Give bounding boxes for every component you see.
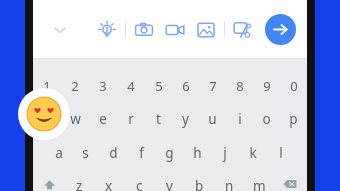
staticText: 9	[263, 77, 271, 95]
button[interactable]: Shift	[33, 177, 65, 191]
button[interactable]: Expand	[47, 17, 73, 43]
staticText: d	[109, 144, 118, 162]
button[interactable]: s	[72, 143, 99, 163]
button[interactable]: a	[45, 143, 72, 163]
button[interactable]: Gallery	[193, 17, 219, 43]
staticText: n	[225, 177, 234, 191]
button[interactable]: x	[94, 177, 124, 191]
button[interactable]: 2	[61, 76, 89, 96]
staticText: g	[165, 144, 174, 162]
button[interactable]: q	[33, 109, 61, 129]
staticText: i	[238, 110, 242, 128]
staticText: x	[105, 177, 113, 191]
staticText: j	[223, 144, 227, 162]
staticText: l	[279, 144, 283, 162]
button[interactable]: l	[267, 143, 295, 163]
button[interactable]: g	[155, 143, 183, 163]
staticText: v	[166, 177, 173, 191]
staticText: e	[99, 110, 107, 128]
button[interactable]: Heart eyes emoji	[18, 88, 70, 140]
button[interactable]: t	[145, 109, 172, 129]
button[interactable]: p	[280, 109, 307, 129]
staticText: 3	[99, 77, 107, 95]
staticText: f	[139, 144, 144, 162]
button[interactable]: Send	[265, 14, 296, 45]
button[interactable]: 8	[226, 76, 253, 96]
staticText: t	[156, 110, 161, 128]
staticText: 0	[290, 77, 298, 95]
staticText: 1	[43, 77, 51, 95]
staticText: z	[76, 177, 83, 191]
staticText: q	[43, 110, 52, 128]
button[interactable]: 3	[89, 76, 117, 96]
button[interactable]: c	[124, 177, 154, 191]
button[interactable]: Video	[162, 17, 188, 43]
button[interactable]: Stickers	[230, 17, 256, 43]
button[interactable]: 7	[199, 76, 226, 96]
button[interactable]: w	[61, 109, 89, 129]
button[interactable]: o	[253, 109, 280, 129]
staticText: c	[136, 177, 143, 191]
staticText: w	[70, 110, 81, 128]
staticText: 2	[71, 77, 79, 95]
button[interactable]: m	[244, 177, 274, 191]
button[interactable]: n	[214, 177, 244, 191]
button[interactable]: 6	[172, 76, 199, 96]
button[interactable]: Camera	[131, 17, 157, 43]
staticText: 8	[236, 77, 244, 95]
staticText: b	[195, 177, 204, 191]
button[interactable]: Backspace	[274, 177, 307, 191]
button[interactable]: d	[99, 143, 127, 163]
button[interactable]: y	[172, 109, 199, 129]
staticText: a	[55, 144, 63, 162]
staticText: o	[262, 110, 271, 128]
button[interactable]: f	[127, 143, 155, 163]
staticText: h	[193, 144, 202, 162]
staticText: r	[128, 110, 134, 128]
staticText: s	[82, 144, 89, 162]
staticText: k	[249, 144, 257, 162]
button[interactable]: h	[183, 143, 211, 163]
staticText: u	[208, 110, 217, 128]
staticText: y	[182, 110, 189, 128]
button[interactable]: i	[226, 109, 253, 129]
staticText: 5	[155, 77, 163, 95]
button[interactable]: v	[154, 177, 184, 191]
staticText: p	[289, 110, 298, 128]
button[interactable]: Suggestions	[94, 17, 120, 43]
button[interactable]: e	[89, 109, 117, 129]
button[interactable]: r	[117, 109, 145, 129]
button[interactable]: u	[199, 109, 226, 129]
button[interactable]: k	[239, 143, 267, 163]
button[interactable]: z	[65, 177, 94, 191]
button[interactable]: 5	[145, 76, 172, 96]
button[interactable]: 0	[280, 76, 307, 96]
button[interactable]: b	[184, 177, 214, 191]
button[interactable]: j	[211, 143, 239, 163]
staticText: 6	[182, 77, 190, 95]
button[interactable]: 1	[33, 76, 61, 96]
button[interactable]: 9	[253, 76, 280, 96]
staticText: 4	[127, 77, 135, 95]
staticText: 7	[209, 77, 217, 95]
staticText: m	[253, 177, 266, 191]
button[interactable]: 4	[117, 76, 145, 96]
